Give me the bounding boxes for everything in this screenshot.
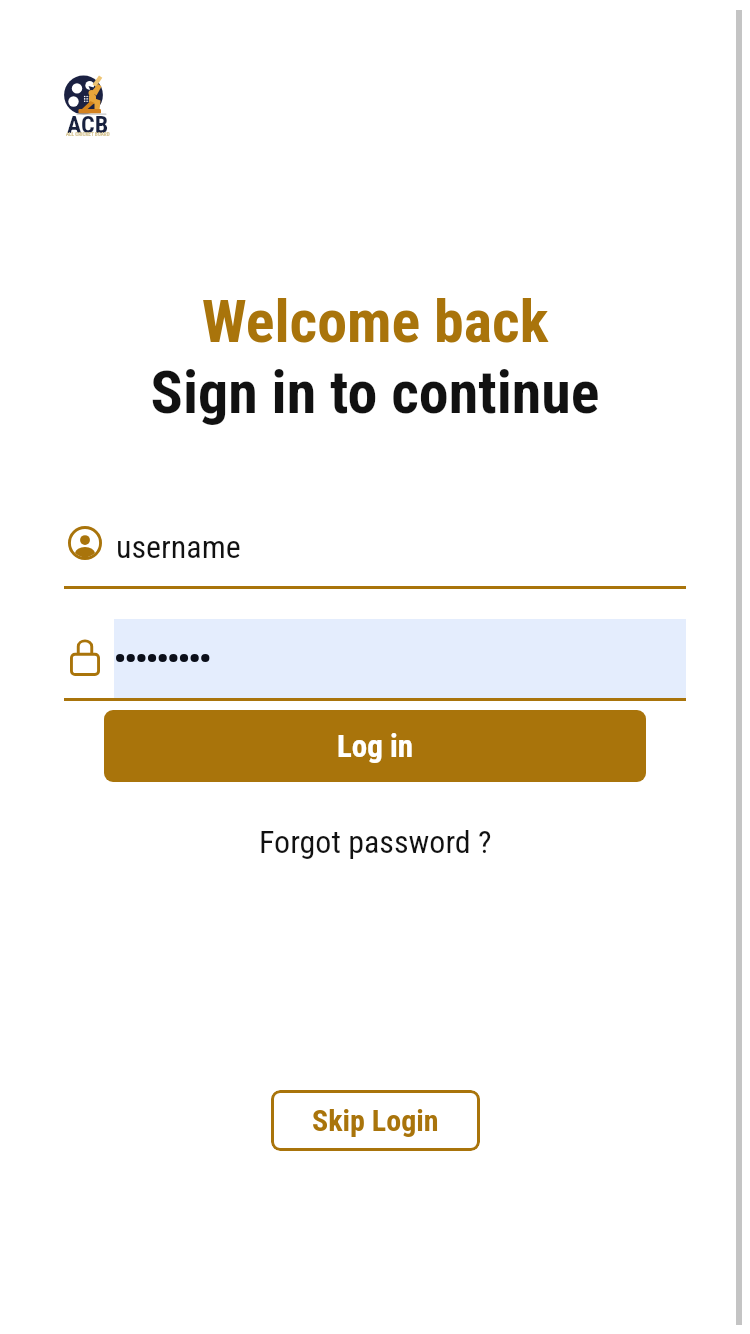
staticText: Welcome back	[0, 286, 750, 356]
other: ACB logo	[64, 74, 112, 140]
staticText: Log in	[337, 728, 414, 764]
button[interactable]: Password	[70, 616, 686, 695]
button[interactable]: Skip Login	[271, 1090, 480, 1151]
staticText: Sign in to continue	[0, 357, 750, 427]
staticText: Skip Login	[312, 1103, 439, 1138]
other: Account	[68, 526, 102, 560]
staticText: username	[116, 528, 241, 566]
staticText: Forgot password ?	[259, 823, 492, 861]
button[interactable]: Log in	[104, 710, 646, 782]
button[interactable]: Account	[68, 506, 686, 580]
staticText: ALL CRICKET BOARD	[66, 131, 110, 137]
button[interactable]: Forgot password ?	[251, 819, 500, 865]
other: Password	[70, 636, 100, 676]
staticText: ACB	[67, 111, 109, 139]
